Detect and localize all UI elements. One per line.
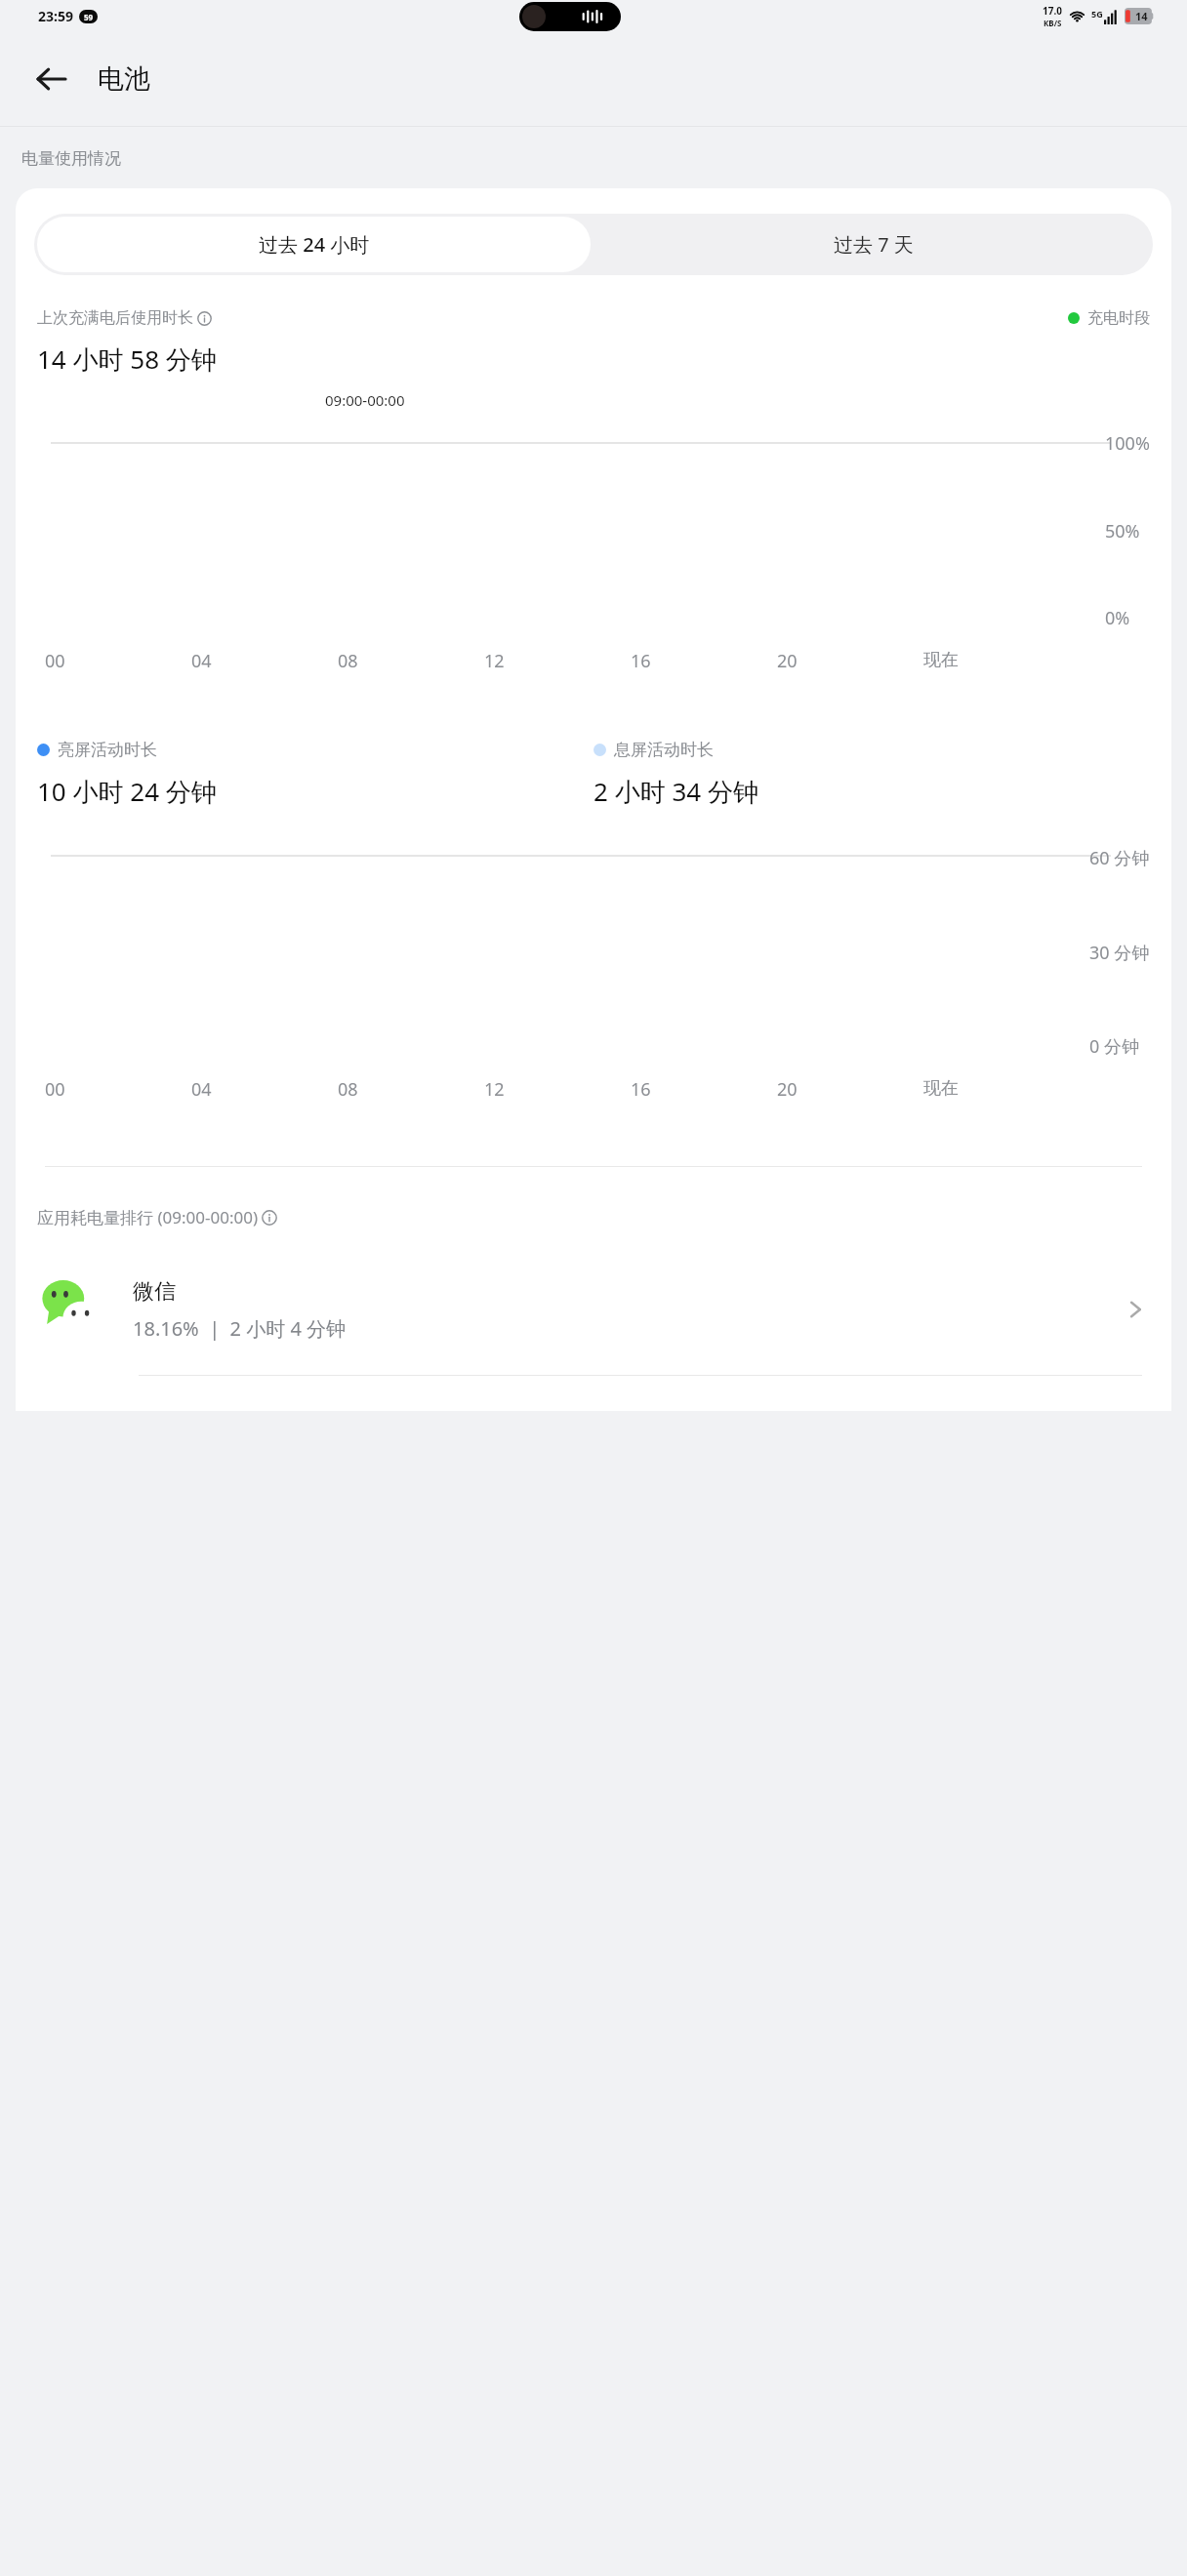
button[interactable]: Back bbox=[25, 54, 76, 104]
staticText: 08 bbox=[338, 1077, 358, 1102]
staticText: 现在 bbox=[923, 1077, 959, 1100]
staticText: 17.0 bbox=[1043, 4, 1062, 18]
staticText: 16 bbox=[631, 649, 651, 673]
staticText: 12 bbox=[484, 649, 505, 673]
staticText: 亮屏活动时长 bbox=[58, 740, 157, 760]
button[interactable]: 微信 bbox=[16, 1258, 1171, 1361]
staticText: 充电时段 bbox=[1087, 308, 1150, 328]
staticText: 50% bbox=[1105, 519, 1140, 543]
staticText: 100% bbox=[1105, 431, 1150, 456]
staticText: 电量使用情况 bbox=[21, 148, 121, 169]
staticText: 现在 bbox=[923, 649, 959, 671]
staticText: 00 bbox=[45, 649, 65, 673]
staticText: 30 分钟 bbox=[1089, 941, 1150, 965]
staticText: 12 bbox=[484, 1077, 505, 1102]
staticText: 0 分钟 bbox=[1089, 1034, 1139, 1059]
staticText: 16 bbox=[631, 1077, 651, 1102]
staticText: 04 bbox=[191, 1077, 212, 1102]
staticText: 60 分钟 bbox=[1089, 846, 1150, 870]
staticText: 过去 24 小时 bbox=[259, 231, 370, 258]
staticText: 上次充满电后使用时长 bbox=[37, 308, 193, 328]
button[interactable]: 过去 24 小时 bbox=[37, 217, 591, 272]
staticText: 08 bbox=[338, 649, 358, 673]
staticText: 14 小时 58 分钟 bbox=[37, 342, 217, 377]
staticText: 过去 7 天 bbox=[834, 231, 914, 258]
staticText: 20 bbox=[777, 649, 798, 673]
staticText: KB/S bbox=[1044, 18, 1062, 28]
staticText: 10 小时 24 分钟 bbox=[37, 774, 217, 809]
staticText: 59 bbox=[84, 12, 94, 22]
staticText: 5G bbox=[1091, 8, 1103, 20]
staticText: 14 bbox=[1135, 9, 1148, 23]
staticText: 息屏活动时长 bbox=[614, 740, 714, 760]
staticText: 2 小时 34 分钟 bbox=[593, 774, 758, 809]
button[interactable]: 过去 7 天 bbox=[593, 214, 1153, 275]
staticText: 20 bbox=[777, 1077, 798, 1102]
staticText: 电池 bbox=[98, 62, 150, 96]
staticText: 0% bbox=[1105, 606, 1130, 630]
staticText: 09:00-00:00 bbox=[325, 390, 405, 410]
staticText: 微信 bbox=[133, 1278, 176, 1306]
staticText: 23:59 bbox=[38, 7, 73, 25]
staticText: 18.16% | 2 小时 4 分钟 bbox=[133, 1315, 347, 1342]
staticText: 04 bbox=[191, 649, 212, 673]
staticText: 00 bbox=[45, 1077, 65, 1102]
staticText: 应用耗电量排行 (09:00-00:00) bbox=[37, 1206, 258, 1228]
